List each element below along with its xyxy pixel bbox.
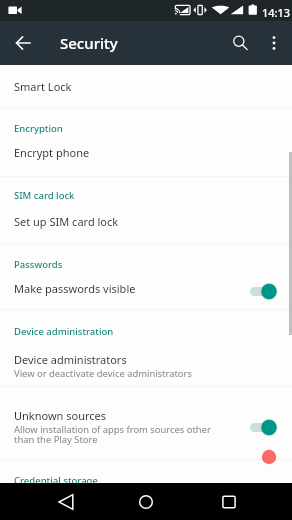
button[interactable]: Back — [45, 483, 87, 520]
staticText: Passwords — [14, 258, 63, 271]
staticText: Set up SIM card lock — [14, 214, 119, 229]
staticText: 14:13 — [262, 5, 291, 20]
button[interactable]: Toggle switch — [250, 419, 277, 436]
button[interactable]: Unknown sources — [0, 408, 292, 458]
staticText: Make passwords visible — [14, 281, 136, 296]
staticText: Encryption — [14, 122, 63, 135]
button[interactable]: Smart Lock — [0, 72, 292, 101]
staticText: Smart Lock — [14, 79, 72, 94]
staticText: View or deactivate device administrators — [14, 367, 192, 380]
staticText: Device administrators — [14, 352, 127, 367]
button[interactable]: Device administrators — [0, 352, 292, 388]
staticText: SIM card lock — [14, 189, 75, 202]
staticText: Credential storage — [14, 474, 98, 487]
button[interactable]: Recent apps — [208, 483, 250, 520]
button[interactable]: Search — [225, 28, 255, 58]
staticText: Allow installation of apps from sources … — [14, 423, 211, 446]
staticText: Security — [60, 33, 118, 53]
button[interactable]: Toggle switch — [250, 283, 277, 300]
button[interactable]: Navigate up — [9, 29, 37, 57]
button[interactable]: More options — [259, 28, 289, 58]
staticText: Encrypt phone — [14, 145, 90, 160]
button[interactable]: Home — [125, 483, 167, 520]
button[interactable]: Make passwords visible — [0, 275, 292, 301]
staticText: Unknown sources — [14, 408, 107, 423]
button[interactable]: Set up SIM card lock — [0, 208, 292, 234]
button[interactable]: Encrypt phone — [0, 139, 292, 165]
staticText: Device administration — [14, 325, 114, 338]
